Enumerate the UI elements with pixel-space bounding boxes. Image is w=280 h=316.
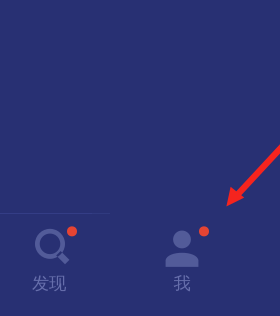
staticText: 发现 xyxy=(32,273,66,294)
staticText: 我 xyxy=(173,273,190,294)
button[interactable]: 发现 xyxy=(0,223,109,301)
button[interactable]: 我 xyxy=(122,223,242,301)
